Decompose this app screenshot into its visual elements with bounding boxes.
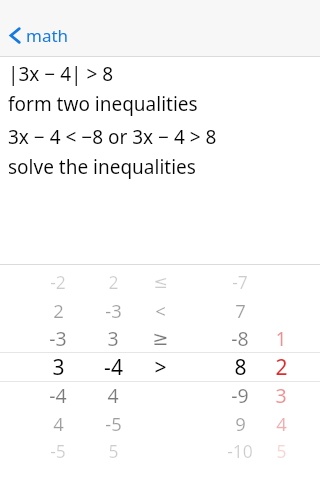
- staticText: -3: [105, 298, 122, 323]
- button[interactable]: 4: [20, 409, 96, 437]
- staticText: -2: [50, 270, 66, 294]
- staticText: 7: [235, 298, 246, 323]
- button[interactable]: 4: [75, 381, 151, 409]
- button[interactable]: 2: [20, 296, 96, 324]
- button[interactable]: 3: [243, 381, 319, 409]
- staticText: -8: [231, 325, 249, 352]
- button[interactable]: -5: [20, 437, 96, 465]
- staticText: 2: [275, 353, 288, 381]
- staticText: -3: [49, 325, 67, 352]
- staticText: 3: [52, 353, 65, 381]
- button[interactable]: 4: [243, 409, 319, 437]
- staticText: |3x − 4| > 8: [8, 61, 114, 87]
- button[interactable]: -4: [75, 353, 151, 381]
- staticText: 5: [276, 439, 287, 463]
- button[interactable]: -7: [202, 268, 278, 296]
- staticText: 4: [276, 411, 287, 436]
- button[interactable]: -4: [20, 381, 96, 409]
- button[interactable]: -9: [202, 381, 278, 409]
- button[interactable]: Back to math: [5, 20, 73, 51]
- button[interactable]: -3: [20, 324, 96, 352]
- button[interactable]: 5: [75, 437, 151, 465]
- staticText: 3: [107, 325, 119, 352]
- button[interactable]: 5: [243, 437, 319, 465]
- staticText: 3x − 4 < −8 or 3x − 4 > 8: [8, 124, 217, 150]
- staticText: -7: [232, 270, 248, 294]
- button[interactable]: 2: [75, 268, 151, 296]
- staticText: 1: [275, 325, 287, 352]
- button[interactable]: <: [122, 296, 198, 324]
- staticText: >: [154, 353, 167, 381]
- button[interactable]: 8: [202, 353, 278, 381]
- button[interactable]: 9: [202, 409, 278, 437]
- staticText: solve the inequalities: [8, 154, 196, 180]
- button[interactable]: 1: [243, 324, 319, 352]
- staticText: 2: [108, 270, 119, 294]
- button[interactable]: ≥: [122, 324, 198, 352]
- staticText: -9: [231, 382, 249, 409]
- button[interactable]: -8: [202, 324, 278, 352]
- button[interactable]: 3: [75, 324, 151, 352]
- button[interactable]: 7: [202, 296, 278, 324]
- staticText: -4: [49, 382, 67, 409]
- staticText: ≤: [153, 272, 168, 292]
- staticText: 5: [108, 439, 119, 463]
- staticText: 4: [107, 382, 119, 409]
- staticText: 4: [53, 411, 64, 436]
- button[interactable]: >: [122, 353, 198, 381]
- staticText: -5: [50, 439, 66, 463]
- button[interactable]: -5: [75, 409, 151, 437]
- button[interactable]: -10: [202, 437, 278, 465]
- button[interactable]: 2: [243, 353, 319, 381]
- staticText: 2: [53, 298, 64, 323]
- button[interactable]: -2: [20, 268, 96, 296]
- staticText: 3: [275, 382, 287, 409]
- staticText: form two inequalities: [8, 91, 198, 117]
- staticText: math: [26, 24, 69, 47]
- staticText: -4: [104, 353, 123, 381]
- staticText: ≥: [152, 327, 169, 350]
- staticText: 8: [234, 353, 247, 381]
- staticText: <: [155, 298, 166, 323]
- button[interactable]: 3: [20, 353, 96, 381]
- button[interactable]: ≤: [122, 268, 198, 296]
- button[interactable]: -3: [75, 296, 151, 324]
- staticText: -5: [105, 411, 122, 436]
- staticText: -10: [227, 439, 253, 463]
- staticText: 9: [235, 411, 246, 436]
